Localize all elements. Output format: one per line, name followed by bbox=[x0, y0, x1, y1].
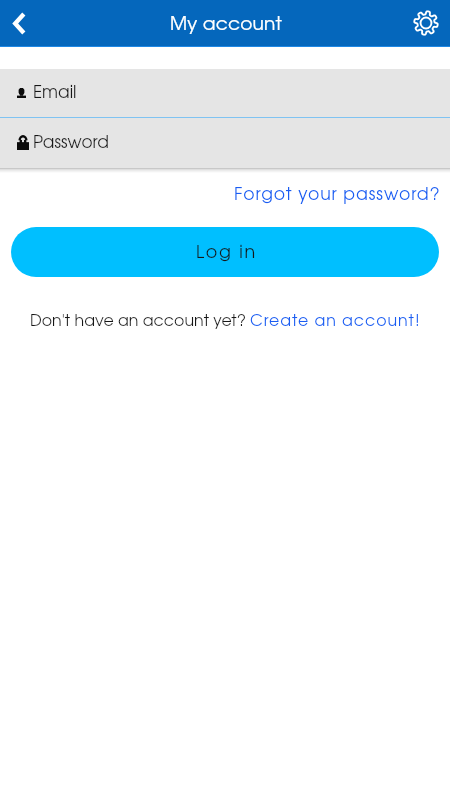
button[interactable]: Password bbox=[0, 118, 450, 168]
staticText: Forgot your password? bbox=[234, 187, 441, 203]
button[interactable]: Log in bbox=[11, 227, 439, 277]
staticText: Create an account! bbox=[250, 314, 421, 329]
staticText: Don't have an account yet? bbox=[30, 314, 247, 329]
staticText: Password bbox=[33, 135, 109, 151]
button[interactable]: Email bbox=[0, 69, 450, 117]
button[interactable]: Back bbox=[0, 0, 37, 46]
staticText: Log in bbox=[196, 245, 257, 261]
staticText: My account bbox=[170, 16, 283, 33]
staticText: Email bbox=[33, 85, 77, 101]
button[interactable]: Create an account! bbox=[250, 314, 421, 329]
button[interactable]: Forgot your password? bbox=[222, 178, 450, 212]
button[interactable]: Settings bbox=[401, 0, 450, 46]
